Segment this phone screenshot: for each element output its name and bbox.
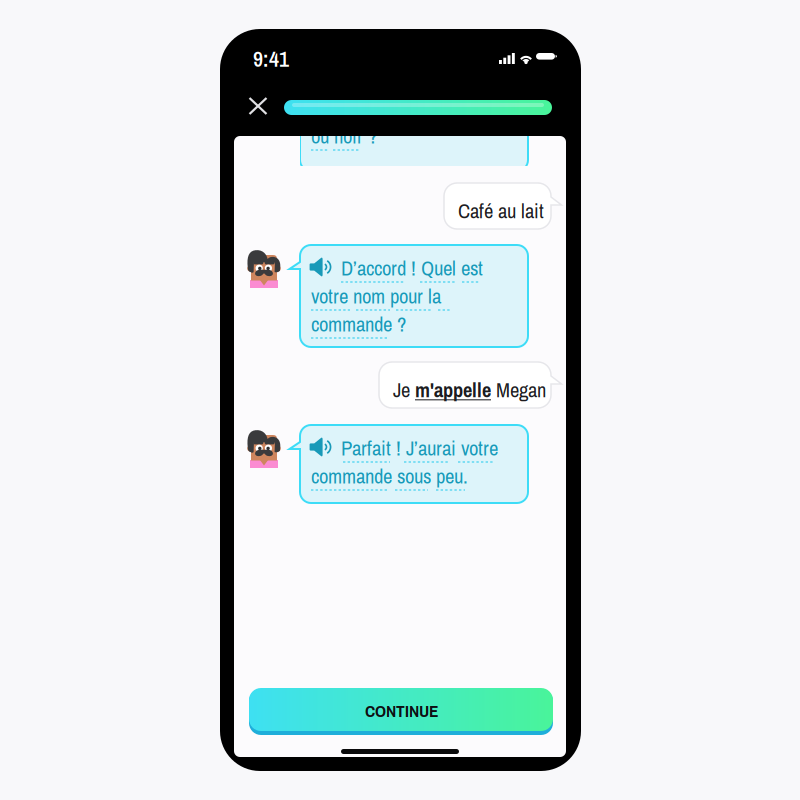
- staticText: commande sous peu.: [311, 462, 468, 490]
- staticText: votre nom pour la: [311, 282, 441, 310]
- button[interactable]: Close lesson: [240, 88, 276, 124]
- staticText: Megan: [491, 376, 546, 404]
- staticText: m'appelle: [415, 376, 491, 404]
- staticText: CONTINUE: [365, 699, 438, 722]
- staticText: D’accord ! Quel est: [341, 254, 483, 282]
- staticText: commande ?: [311, 310, 406, 338]
- staticText: Parfait ! J’aurai votre: [341, 434, 498, 462]
- staticText: Café au lait: [458, 197, 544, 225]
- staticText: Je: [393, 376, 415, 404]
- button[interactable]: CONTINUE: [249, 688, 553, 738]
- staticText: ou noir ?: [311, 122, 377, 150]
- staticText: 9:41: [253, 44, 289, 74]
